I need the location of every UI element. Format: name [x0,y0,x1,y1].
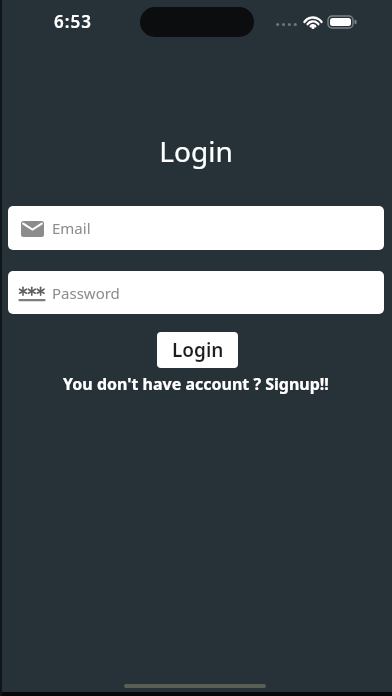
staticText: Password [52,283,120,303]
button[interactable]: Login [157,332,238,368]
button[interactable]: You don't have account ? Signup!! [0,373,392,395]
staticText: Email [52,218,91,238]
staticText: Login [172,337,224,363]
button[interactable]: Email [8,206,384,250]
button[interactable]: Password [8,271,384,314]
staticText: 6:53 [54,10,92,33]
staticText: Login [0,132,392,170]
